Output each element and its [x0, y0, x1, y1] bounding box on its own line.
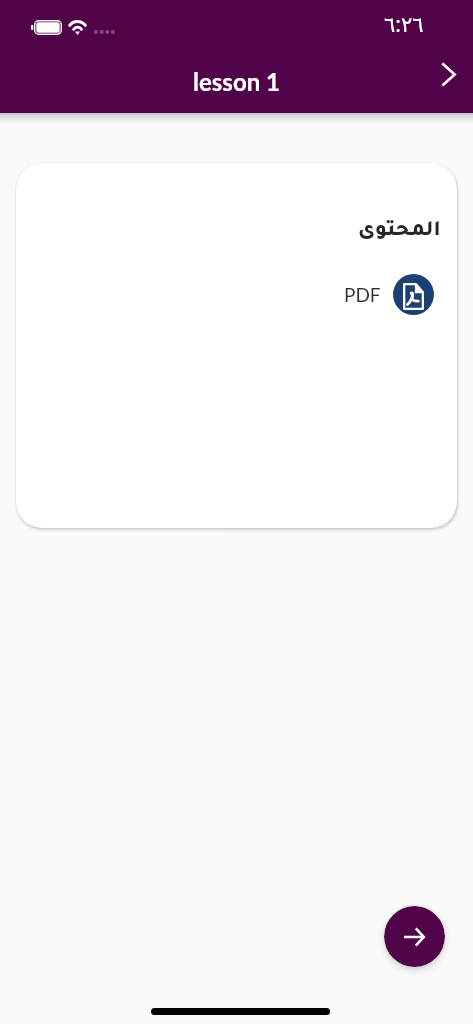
button[interactable]: Back	[425, 50, 473, 98]
button[interactable]: PDF	[334, 270, 434, 319]
staticText: lesson 1	[193, 67, 280, 96]
staticText: PDF	[344, 283, 381, 306]
staticText: المحتوى	[358, 221, 441, 243]
staticText: ٦:٢٦	[384, 10, 424, 39]
button[interactable]: Next	[384, 906, 445, 967]
